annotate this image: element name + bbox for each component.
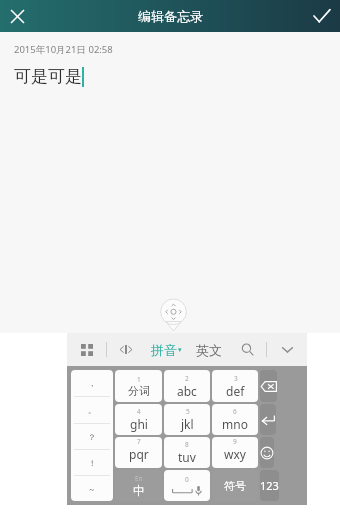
button[interactable]: Hide keyboard <box>267 333 307 366</box>
button[interactable]: Backspace <box>260 370 277 402</box>
staticText: 编辑备忘录 <box>138 8 203 24</box>
staticText: ？ <box>88 432 96 442</box>
staticText: 5 <box>186 407 190 416</box>
staticText: 6 <box>233 407 237 416</box>
staticText: 0 <box>185 475 189 484</box>
button[interactable]: Space <box>164 470 210 501</box>
button[interactable]: Search <box>229 333 266 366</box>
button[interactable]: 3 <box>212 370 258 402</box>
button[interactable]: Close <box>0 0 34 32</box>
button[interactable]: 2 <box>164 370 210 402</box>
staticText: 123 <box>260 478 279 493</box>
staticText: 分词 <box>128 384 150 398</box>
button[interactable]: 6 <box>212 404 258 435</box>
staticText: 英文 <box>196 342 222 358</box>
button[interactable]: 拼音 <box>144 333 189 366</box>
staticText: 。 <box>88 405 96 415</box>
staticText: tuv <box>178 449 196 465</box>
staticText: ， <box>88 378 96 388</box>
staticText: 符号 <box>224 479 246 493</box>
staticText: 9 <box>233 437 237 446</box>
button[interactable]: Emoji <box>260 437 274 468</box>
staticText: ▾ <box>178 346 182 354</box>
button[interactable]: ？ <box>71 424 113 449</box>
staticText: 8 <box>185 440 189 449</box>
staticText: 中 <box>133 483 145 498</box>
staticText: 2 <box>185 374 189 383</box>
button[interactable]: 123 <box>260 470 279 501</box>
button[interactable]: ！ <box>71 450 113 475</box>
staticText: ghi <box>130 416 148 432</box>
button[interactable]: Save <box>304 0 340 32</box>
button[interactable]: Enter <box>260 404 276 435</box>
staticText: 7 <box>137 437 141 446</box>
staticText: mno <box>222 416 248 432</box>
button[interactable]: 9 <box>212 437 258 468</box>
staticText: def <box>226 383 245 399</box>
staticText: 4 <box>137 407 141 416</box>
staticText: jkl <box>181 416 194 432</box>
staticText: 可是可是 <box>14 66 82 87</box>
button[interactable]: 7 <box>115 437 162 468</box>
button[interactable]: 8 <box>164 437 210 468</box>
button[interactable]: 1 <box>115 370 162 402</box>
staticText: ！ <box>88 458 96 468</box>
staticText: abc <box>177 383 197 399</box>
staticText: 2015年10月21日 02:58 <box>14 43 113 56</box>
button[interactable]: 5 <box>164 404 210 435</box>
button[interactable]: Keyboard width <box>107 333 144 366</box>
button[interactable]: ， <box>71 370 113 396</box>
staticText: En <box>135 474 143 483</box>
staticText: 1 <box>137 375 141 384</box>
button[interactable]: ～ <box>71 476 113 501</box>
staticText: 3 <box>234 374 238 383</box>
staticText: pqr <box>129 446 149 462</box>
staticText: wxy <box>224 446 246 462</box>
button[interactable]: 4 <box>115 404 162 435</box>
staticText: 拼音 <box>151 342 177 358</box>
button[interactable]: 符号 <box>212 470 258 501</box>
button[interactable]: Keyboard layouts <box>67 333 106 366</box>
button[interactable]: 英文 <box>189 333 229 366</box>
staticText: ～ <box>88 484 96 494</box>
button[interactable]: En <box>115 470 162 501</box>
